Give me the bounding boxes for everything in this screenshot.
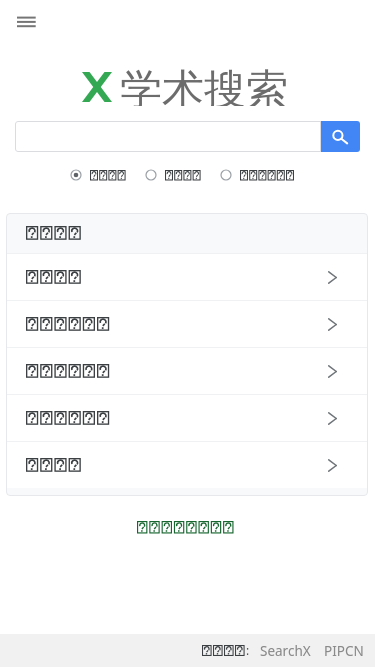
button[interactable]: Menu (11, 11, 41, 41)
button[interactable] (6, 348, 368, 394)
button[interactable] (220, 169, 295, 181)
button[interactable]: SearchX (260, 642, 311, 660)
button[interactable] (6, 395, 368, 441)
button[interactable]: Search (321, 121, 360, 152)
button[interactable] (145, 169, 202, 181)
staticText: : (246, 642, 250, 658)
button[interactable] (70, 169, 127, 181)
button[interactable] (6, 442, 368, 488)
button[interactable] (6, 301, 368, 347)
button[interactable]: PIPCN (324, 642, 364, 660)
button[interactable] (135, 519, 237, 536)
staticText: 学术搜索 (120, 64, 288, 106)
button[interactable] (6, 254, 368, 300)
button[interactable] (15, 121, 321, 152)
